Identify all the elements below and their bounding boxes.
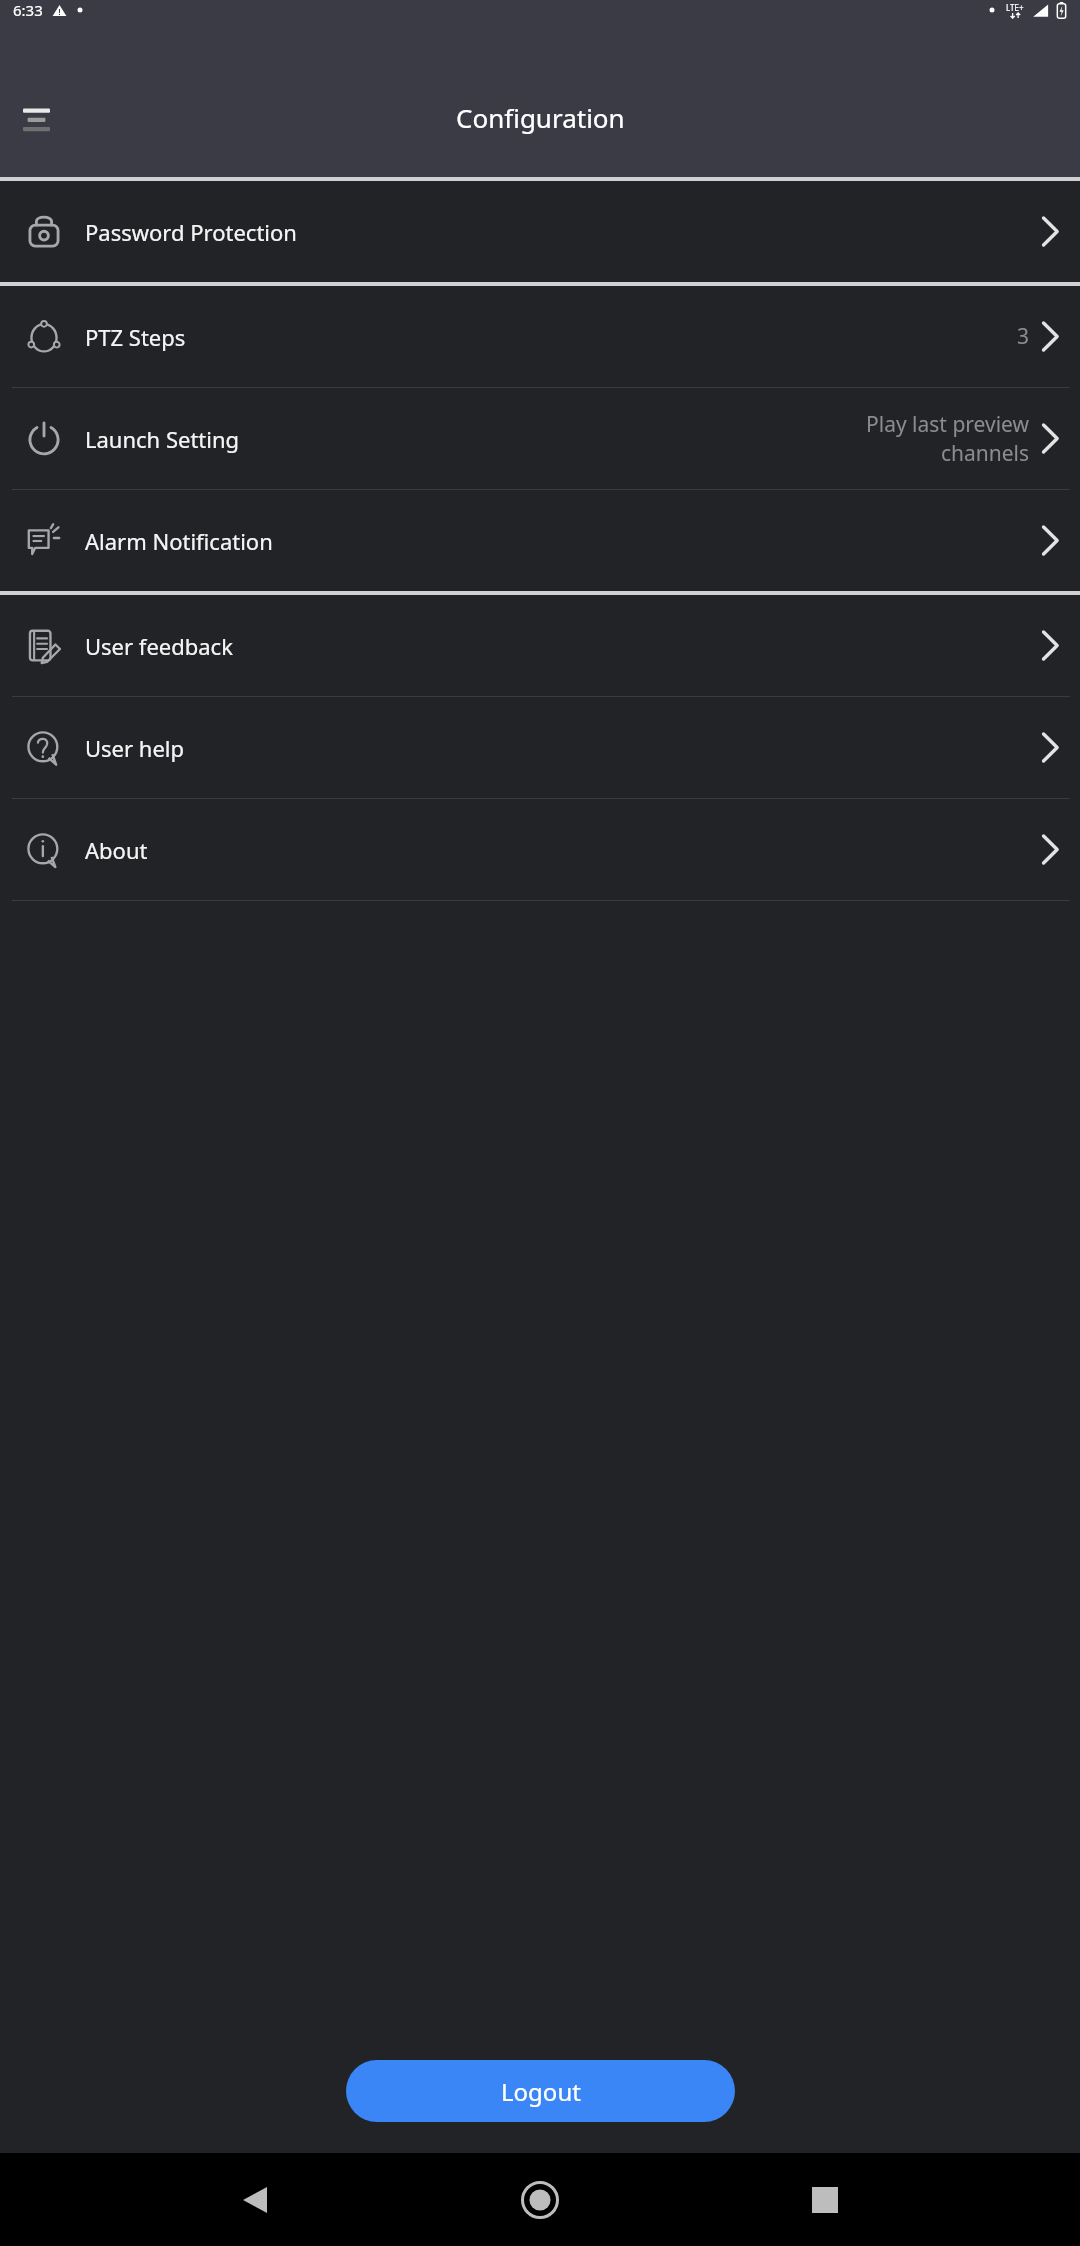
button[interactable]: PTZ Steps <box>0 286 1080 387</box>
staticText: Launch Setting <box>85 424 240 454</box>
staticText: PTZ Steps <box>85 322 186 352</box>
button[interactable]: User feedback <box>0 595 1080 696</box>
button[interactable]: Back <box>225 2170 285 2230</box>
button[interactable]: Launch Setting <box>0 388 1080 489</box>
button[interactable]: Alarm Notification <box>0 490 1080 591</box>
staticText: User help <box>85 733 185 763</box>
staticText: 3 <box>989 322 1029 351</box>
staticText: LTE+ <box>1006 2 1024 13</box>
staticText: About <box>85 835 148 865</box>
staticText: 6:33 <box>13 0 43 20</box>
staticText: Play last preview channels <box>864 410 1029 468</box>
staticText: User feedback <box>85 631 233 661</box>
staticText: Configuration <box>456 100 625 135</box>
staticText: Password Protection <box>85 217 297 247</box>
button[interactable]: Home <box>510 2170 570 2230</box>
button[interactable]: Password Protection <box>0 181 1080 282</box>
staticText: Logout <box>501 2075 581 2108</box>
button[interactable]: Menu <box>14 96 58 140</box>
staticText: Alarm Notification <box>85 526 273 556</box>
button[interactable]: User help <box>0 697 1080 798</box>
button[interactable]: About <box>0 799 1080 900</box>
button[interactable]: Recents <box>795 2170 855 2230</box>
button[interactable]: Logout <box>346 2060 735 2122</box>
